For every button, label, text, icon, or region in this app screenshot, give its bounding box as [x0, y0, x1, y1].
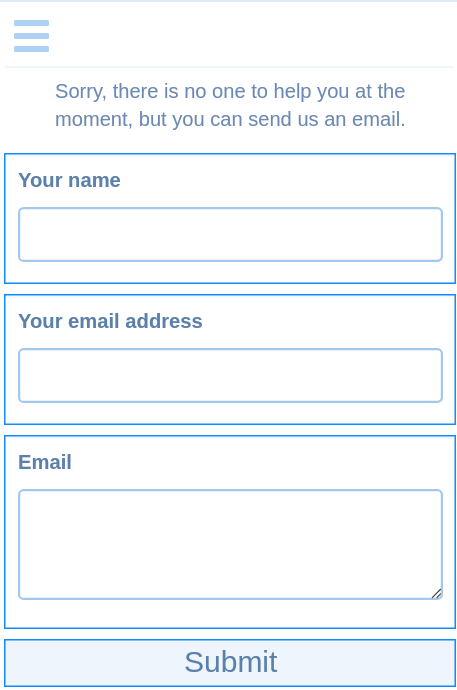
button[interactable]: Email — [18, 489, 443, 600]
button[interactable]: Your email address — [18, 348, 443, 403]
button[interactable]: Your name — [18, 207, 443, 262]
staticText: Email — [18, 451, 72, 474]
staticText: Your email address — [18, 310, 203, 333]
button[interactable]: Submit — [4, 639, 456, 687]
staticText: Your name — [18, 169, 121, 192]
button[interactable]: Open navigation menu — [14, 20, 49, 52]
staticText: Submit — [184, 645, 278, 679]
staticText: Sorry, there is no one to help you at th… — [55, 80, 415, 130]
